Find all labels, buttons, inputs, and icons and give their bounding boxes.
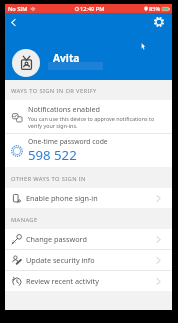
staticText: 12:49 PM: [80, 5, 105, 13]
staticText: One-time password code: [28, 137, 108, 146]
staticText: No SIM: [8, 5, 28, 13]
button[interactable]: Settings: [152, 15, 166, 29]
staticText: You can use this device to approve notif…: [28, 115, 167, 129]
button[interactable]: Notifications enabled: [5, 100, 172, 133]
staticText: Update security info: [26, 255, 95, 265]
button[interactable]: Back: [5, 14, 21, 30]
staticText: MANAGE: [11, 216, 38, 224]
staticText: Enable phone sign-in: [26, 193, 98, 203]
staticText: 598 522: [28, 146, 77, 164]
staticText: Avita: [53, 51, 80, 65]
button[interactable]: Enable phone sign-in: [5, 188, 172, 208]
button[interactable]: Update security info: [5, 250, 172, 270]
staticText: OTHER WAYS TO SIGN IN: [11, 175, 86, 183]
button[interactable]: Review recent activity: [5, 271, 172, 291]
button[interactable]: Change password: [5, 229, 172, 249]
staticText: 85%: [149, 5, 161, 13]
staticText: WAYS TO SIGN IN OR VERIFY: [11, 87, 97, 95]
staticText: Change password: [26, 234, 87, 244]
staticText: Review recent activity: [26, 276, 99, 286]
button[interactable]: One-time password code: [5, 134, 172, 167]
staticText: Notifications enabled: [28, 104, 100, 114]
